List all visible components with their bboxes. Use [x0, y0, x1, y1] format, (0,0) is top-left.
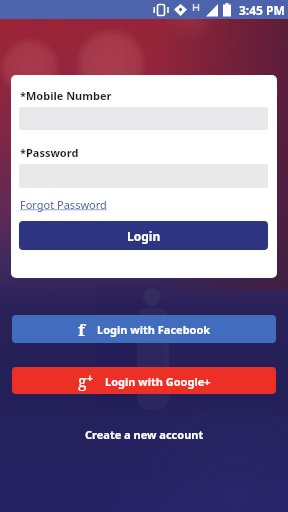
staticText: *Password: [20, 145, 79, 160]
staticText: f: [78, 318, 85, 341]
staticText: 3:45 PM: [239, 2, 285, 18]
staticText: g: [78, 370, 87, 392]
staticText: Login with Facebook: [97, 322, 211, 337]
staticText: Login: [127, 228, 161, 244]
button[interactable]: g: [12, 367, 276, 394]
button[interactable]: f: [12, 315, 276, 343]
button[interactable]: Login: [19, 221, 268, 250]
button[interactable]: Create a new account: [85, 427, 204, 442]
staticText: *Mobile Number: [20, 88, 112, 103]
staticText: Login with Google+: [105, 374, 211, 389]
staticText: +: [87, 371, 93, 385]
button[interactable]: Forgot Password: [20, 197, 107, 212]
